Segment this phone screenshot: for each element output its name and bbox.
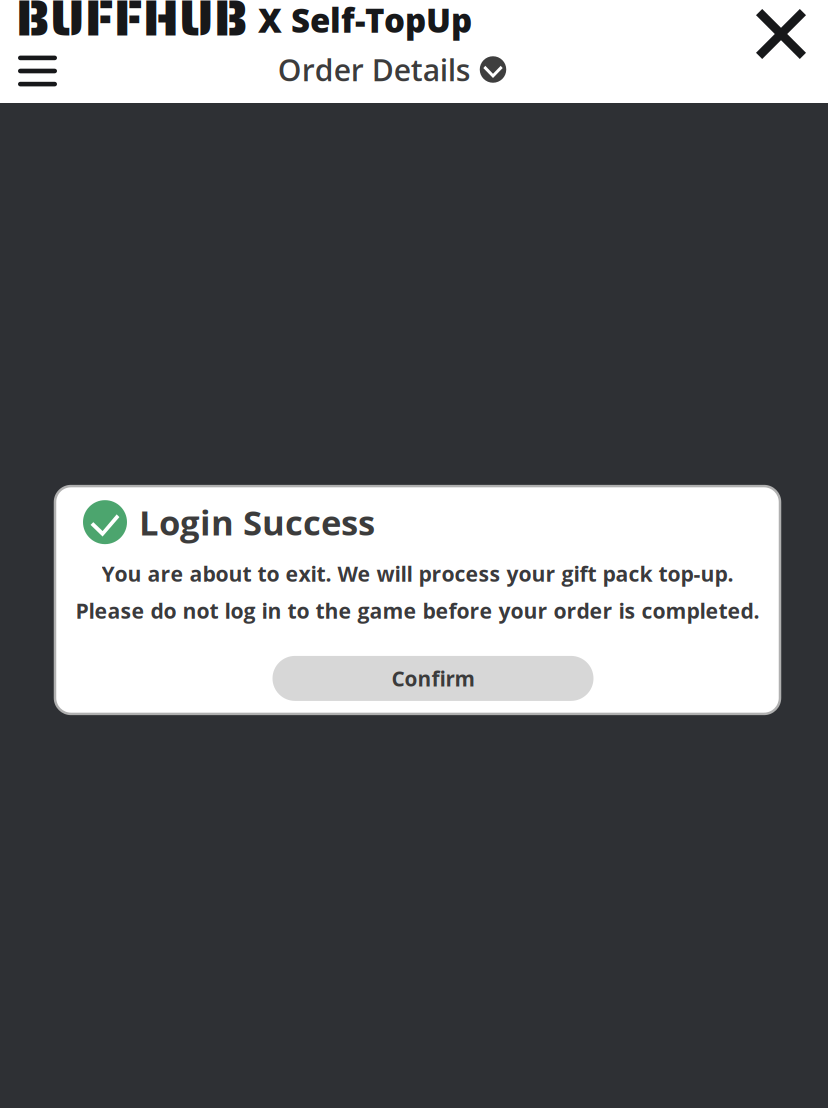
staticText: X Self-TopUp (258, 0, 472, 42)
staticText: Please do not log in to the game before … (75, 596, 759, 625)
button[interactable]: Menu (6, 45, 68, 97)
button[interactable]: Close (742, 0, 820, 73)
staticText: You are about to exit. We will process y… (101, 559, 733, 588)
button[interactable]: Order Details (278, 46, 506, 92)
button[interactable]: Confirm (272, 656, 593, 701)
staticText: Confirm (391, 664, 474, 692)
staticText: Login Success (139, 499, 375, 546)
staticText: Order Details (278, 49, 471, 90)
staticText: BUFFHUB (16, 0, 248, 57)
